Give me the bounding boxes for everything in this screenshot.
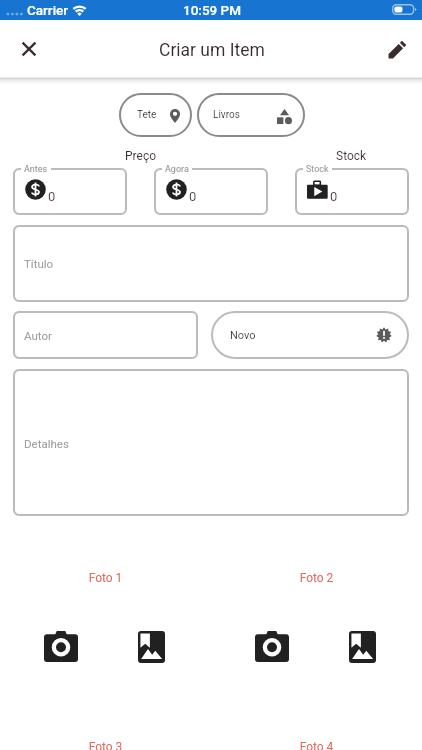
staticText: Livros bbox=[213, 109, 240, 121]
button[interactable]: Choose photo bbox=[340, 625, 384, 669]
staticText: Autor bbox=[24, 329, 52, 342]
staticText: Foto 1 bbox=[0, 571, 211, 585]
staticText: 0 bbox=[189, 189, 197, 204]
staticText: Carrier bbox=[27, 2, 69, 18]
staticText: 0 bbox=[330, 189, 338, 204]
staticText: Criar um Item bbox=[159, 40, 265, 61]
staticText: Novo bbox=[230, 329, 256, 342]
staticText: Stock bbox=[336, 149, 367, 163]
button[interactable]: Take photo bbox=[39, 624, 83, 668]
button[interactable]: Detalhes bbox=[13, 369, 409, 516]
staticText: Foto 3 bbox=[0, 740, 211, 750]
staticText: Foto 4 bbox=[211, 740, 422, 750]
button[interactable]: Autor bbox=[13, 311, 198, 359]
button[interactable]: Take photo bbox=[250, 624, 294, 668]
button[interactable]: Edit bbox=[375, 27, 419, 71]
staticText: Antes bbox=[24, 164, 48, 175]
staticText: Detalhes bbox=[24, 437, 69, 450]
button[interactable]: Livros bbox=[197, 93, 305, 137]
staticText: Tete bbox=[137, 109, 157, 121]
staticText: 0 bbox=[48, 189, 56, 204]
staticText: 10:59 PM bbox=[183, 2, 242, 18]
button[interactable]: Agora bbox=[154, 161, 268, 215]
button[interactable]: Novo bbox=[211, 311, 409, 359]
staticText: Stock bbox=[306, 164, 329, 175]
button[interactable]: Antes bbox=[13, 161, 127, 215]
button[interactable]: Stock bbox=[295, 161, 409, 215]
staticText: Foto 2 bbox=[211, 571, 422, 585]
staticText: Preço bbox=[125, 149, 157, 163]
button[interactable]: Choose photo bbox=[129, 625, 173, 669]
button[interactable]: Tete bbox=[119, 93, 192, 137]
button[interactable]: Título bbox=[13, 225, 409, 302]
button[interactable]: Close bbox=[7, 27, 51, 71]
staticText: Título bbox=[24, 257, 54, 270]
staticText: Agora bbox=[165, 164, 189, 175]
